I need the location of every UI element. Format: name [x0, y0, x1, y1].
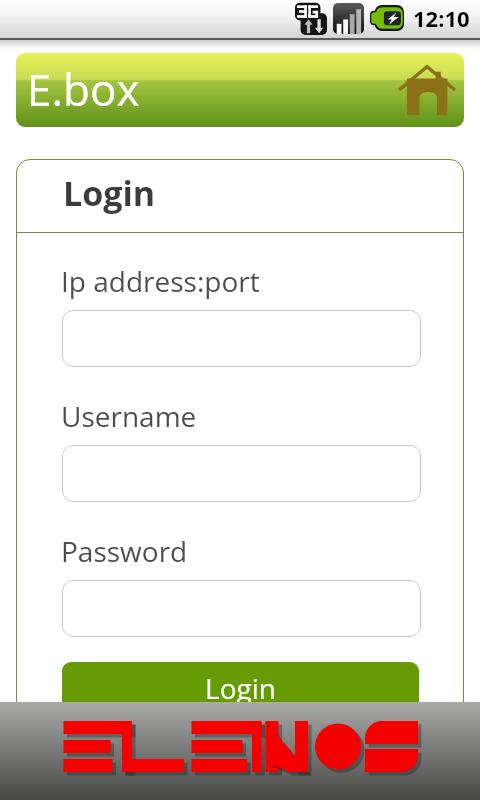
staticText: Ip address:port: [61, 262, 260, 300]
button[interactable]: Login: [62, 662, 419, 737]
button[interactable]: E.box: [16, 53, 464, 127]
button[interactable]: [62, 580, 421, 637]
button[interactable]: [62, 445, 421, 502]
staticText: Login: [205, 669, 276, 707]
staticText: Username: [61, 397, 197, 435]
staticText: Login: [63, 170, 156, 216]
staticText: 12:10: [413, 3, 470, 33]
staticText: Password: [61, 532, 188, 570]
staticText: E.box: [27, 59, 140, 119]
button[interactable]: [62, 310, 421, 367]
button[interactable]: Home: [397, 65, 457, 115]
